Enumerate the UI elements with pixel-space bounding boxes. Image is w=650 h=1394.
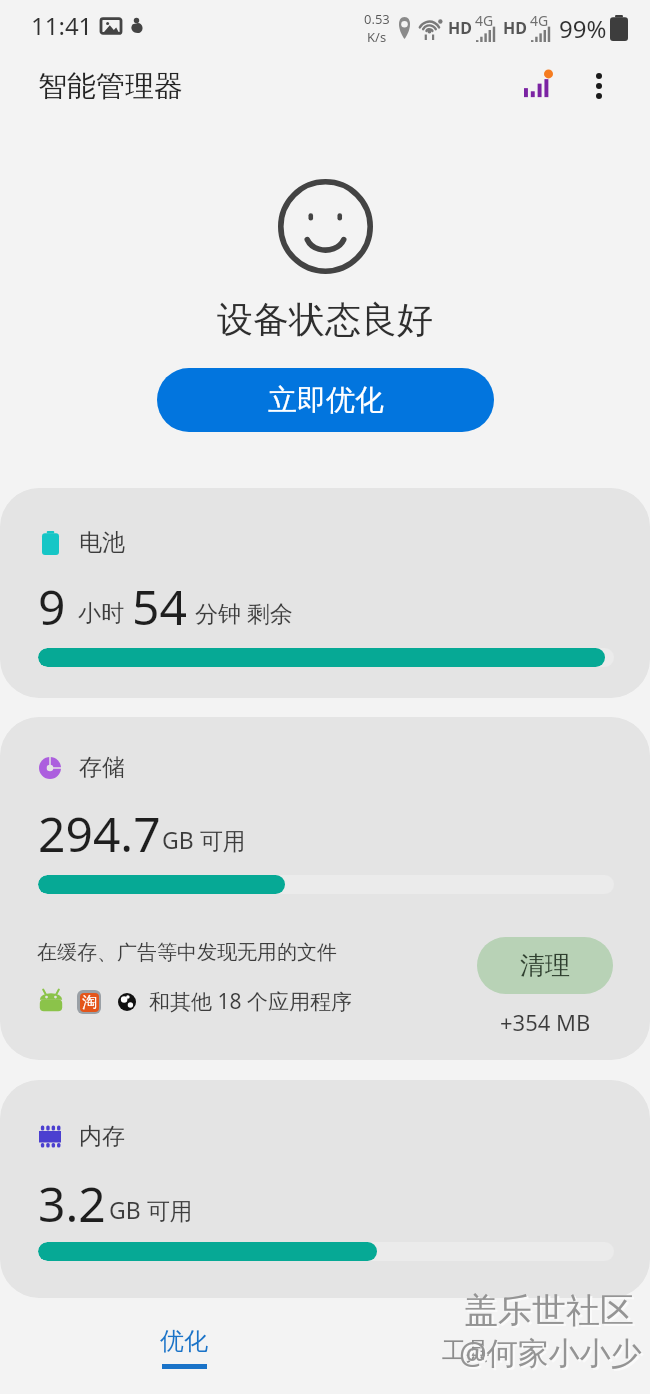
staticText: 淘: [82, 993, 97, 1012]
staticText: 电池: [79, 528, 125, 557]
staticText: 9: [38, 574, 66, 639]
staticText: 和其他 18 个应用程序: [149, 987, 352, 1016]
button[interactable]: Data usage: [515, 55, 573, 111]
staticText: 立即优化: [268, 382, 384, 419]
staticText: 分钟 剩余: [195, 597, 293, 628]
staticText: 3.2: [38, 1171, 106, 1236]
staticText: 设备状态良好: [217, 297, 433, 342]
staticText: 54: [132, 574, 187, 639]
staticText: +354 MB: [500, 1007, 591, 1037]
button[interactable]: 优化: [43, 1300, 325, 1394]
staticText: 工具: [442, 1336, 490, 1366]
staticText: K/s: [367, 28, 387, 46]
staticText: 4G: [475, 11, 494, 30]
button[interactable]: 电池: [0, 488, 650, 698]
staticText: 盖乐世社区: [464, 1289, 634, 1332]
staticText: 优化: [160, 1326, 208, 1356]
staticText: 99%: [559, 12, 607, 45]
staticText: 存储: [79, 753, 125, 782]
staticText: 0.53: [364, 10, 390, 28]
staticText: 4G: [530, 11, 549, 30]
staticText: GB 可用: [162, 824, 246, 855]
staticText: 小时: [78, 599, 124, 628]
staticText: 在缓存、广告等中发现无用的文件: [37, 940, 337, 965]
button[interactable]: 立即优化: [157, 368, 494, 432]
staticText: @何家小小少: [461, 1333, 644, 1375]
staticText: GB 可用: [109, 1194, 193, 1225]
staticText: HD: [503, 17, 527, 39]
staticText: 清理: [520, 950, 570, 981]
button[interactable]: 内存: [0, 1080, 650, 1298]
staticText: 智能管理器: [38, 68, 183, 105]
staticText: 盖乐世社区: [466, 1291, 636, 1334]
staticText: 294.7: [38, 801, 161, 866]
button[interactable]: 存储: [0, 717, 650, 1060]
button[interactable]: More options: [573, 55, 625, 111]
staticText: HD: [448, 17, 472, 39]
button[interactable]: 清理: [477, 937, 613, 994]
staticText: 内存: [79, 1122, 125, 1151]
staticText: 11:41: [31, 9, 93, 42]
button[interactable]: 工具: [325, 1300, 607, 1394]
staticText: @何家小小少: [459, 1331, 642, 1373]
